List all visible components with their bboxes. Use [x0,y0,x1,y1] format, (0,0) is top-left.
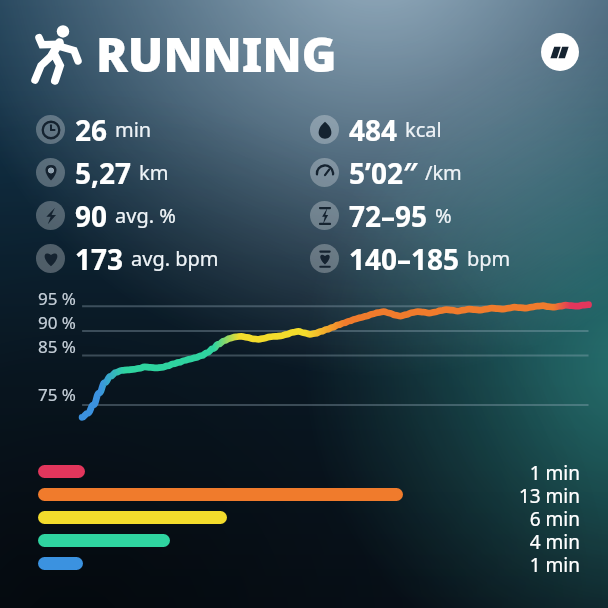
staticText: 75 % [0,383,76,406]
staticText: min [115,116,152,143]
staticText: 1 min [529,552,580,575]
staticText: km [139,159,169,186]
staticText: 85 % [0,335,76,358]
staticText: 95 % [0,287,76,310]
staticText: 26 [75,111,108,149]
button[interactable]: 13 min [38,483,580,506]
button[interactable]: 1 min [38,552,580,575]
staticText: 4 min [529,529,580,552]
staticText: 90 [75,197,108,235]
staticText: avg. bpm [131,245,219,272]
staticText: 90 % [0,311,76,334]
staticText: 72–95 [349,197,428,235]
button[interactable]: 90 [36,194,176,237]
button[interactable]: 5,27 [36,151,169,194]
staticText: 173 [75,240,124,278]
staticText: 6 min [529,506,580,529]
staticText: kcal [405,116,442,143]
staticText: 484 [349,111,398,149]
staticText: bpm [467,245,511,272]
button[interactable]: 26 [36,108,152,151]
button[interactable]: RUNNING [32,22,337,86]
staticText: 5,27 [75,154,132,192]
staticText: avg. % [115,202,176,229]
staticText: 140–185 [349,240,460,278]
staticText: 13 min [518,483,580,506]
staticText: RUNNING [96,22,337,86]
staticText: 5’02″ [349,154,418,192]
button[interactable]: 140–185 [310,237,511,280]
button[interactable]: 5’02″ [310,151,462,194]
button[interactable]: 173 [36,237,219,280]
staticText: % [435,202,452,229]
button[interactable]: 4 min [38,529,580,552]
button[interactable]: 484 [310,108,442,151]
staticText: 1 min [529,460,580,483]
button[interactable]: 72–95 [310,194,452,237]
button[interactable]: App logo [541,33,579,71]
button[interactable]: 1 min [38,460,580,483]
button[interactable]: 6 min [38,506,580,529]
staticText: /km [425,159,462,186]
